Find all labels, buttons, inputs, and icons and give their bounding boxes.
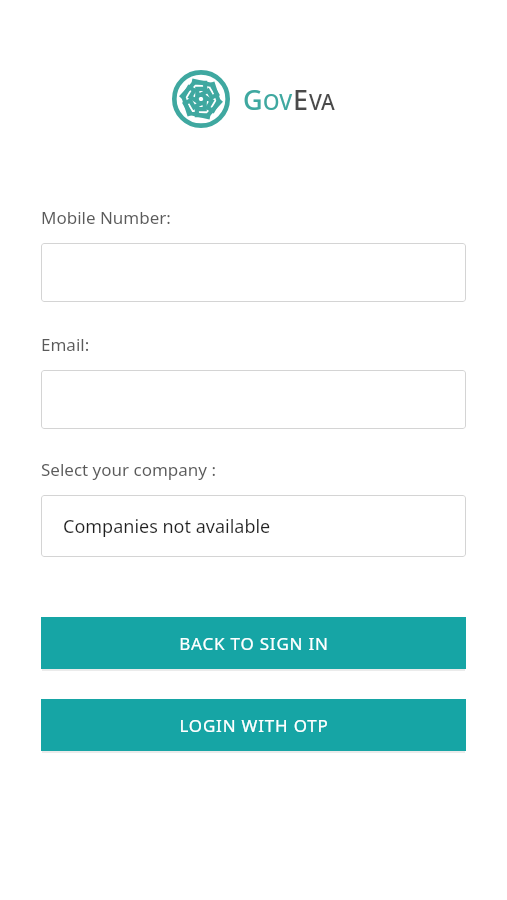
staticText: E (293, 81, 309, 118)
button[interactable]: Mobile Number (41, 243, 466, 302)
button[interactable]: BACK TO SIGN IN (41, 617, 466, 669)
staticText: LOGIN WITH OTP (179, 714, 329, 737)
staticText: Mobile Number: (41, 206, 171, 229)
staticText: OV (263, 88, 293, 117)
staticText: BACK TO SIGN IN (179, 632, 329, 655)
staticText: G (243, 81, 263, 118)
staticText: Companies not available (63, 514, 271, 539)
button[interactable]: Email (41, 370, 466, 429)
staticText: Email: (41, 333, 90, 356)
staticText: Select your company : (41, 458, 216, 481)
staticText: VA (309, 88, 335, 117)
button[interactable]: LOGIN WITH OTP (41, 699, 466, 751)
button[interactable]: Select your company (41, 495, 466, 557)
